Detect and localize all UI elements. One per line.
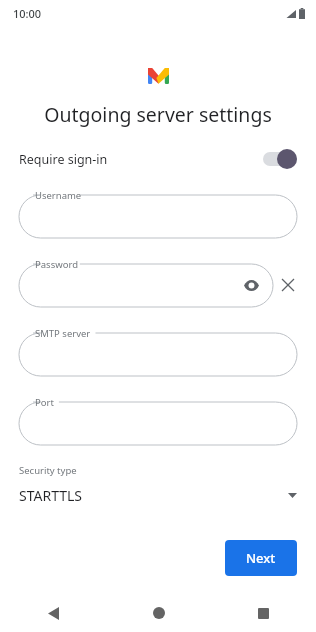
button[interactable]: Next [225, 540, 297, 576]
staticText: Security type [19, 464, 77, 477]
staticText: SMTP server [35, 327, 91, 340]
staticText: Username [35, 189, 82, 202]
button[interactable]: Back [0, 594, 106, 632]
staticText: STARTTLS [19, 486, 83, 505]
button[interactable]: SMTP server [19, 324, 297, 376]
staticText: Outgoing server settings [10, 101, 306, 128]
staticText: Password [35, 258, 78, 271]
staticText: Next [246, 549, 276, 567]
button[interactable]: Port [19, 393, 297, 445]
button[interactable]: Require sign-in [0, 144, 316, 174]
button[interactable]: Username [19, 186, 297, 238]
staticText: Port [35, 396, 54, 409]
button[interactable]: Show password [238, 272, 264, 298]
button[interactable]: Require sign-in [263, 149, 297, 169]
button[interactable]: Password [19, 255, 273, 307]
staticText: Require sign-in [19, 151, 108, 168]
button[interactable]: Clear password [273, 270, 303, 300]
button[interactable]: Security type [0, 464, 316, 505]
button[interactable]: Home [106, 594, 211, 632]
button[interactable]: Recent apps [211, 594, 316, 632]
staticText: 10:00 [13, 6, 42, 21]
